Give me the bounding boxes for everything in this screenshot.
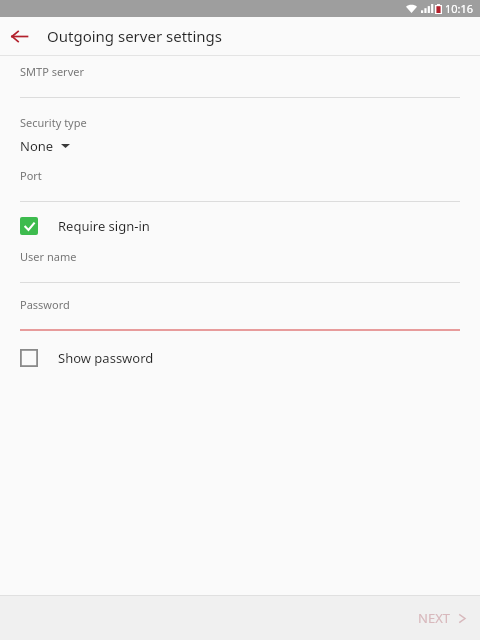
button[interactable]: SMTP server <box>0 56 480 79</box>
staticText: SMTP server <box>20 64 84 79</box>
button[interactable]: Back <box>0 17 38 55</box>
staticText: Password <box>20 297 70 312</box>
staticText: Show password <box>58 349 154 367</box>
staticText: 10:16 <box>445 1 474 16</box>
button[interactable]: Show password <box>0 344 480 372</box>
button[interactable]: Require sign-in <box>0 212 480 240</box>
staticText: NEXT <box>418 609 450 627</box>
button[interactable]: Port <box>0 168 480 183</box>
staticText: User name <box>20 249 77 264</box>
button[interactable]: NEXT <box>404 599 480 637</box>
staticText: Require sign-in <box>58 217 150 235</box>
staticText: Security type <box>20 115 87 130</box>
staticText: Port <box>20 168 42 183</box>
button[interactable]: Security type <box>0 115 480 155</box>
staticText: None <box>20 137 54 155</box>
button[interactable]: Password <box>0 297 480 312</box>
staticText: Outgoing server settings <box>47 26 223 46</box>
button[interactable]: User name <box>0 249 480 264</box>
